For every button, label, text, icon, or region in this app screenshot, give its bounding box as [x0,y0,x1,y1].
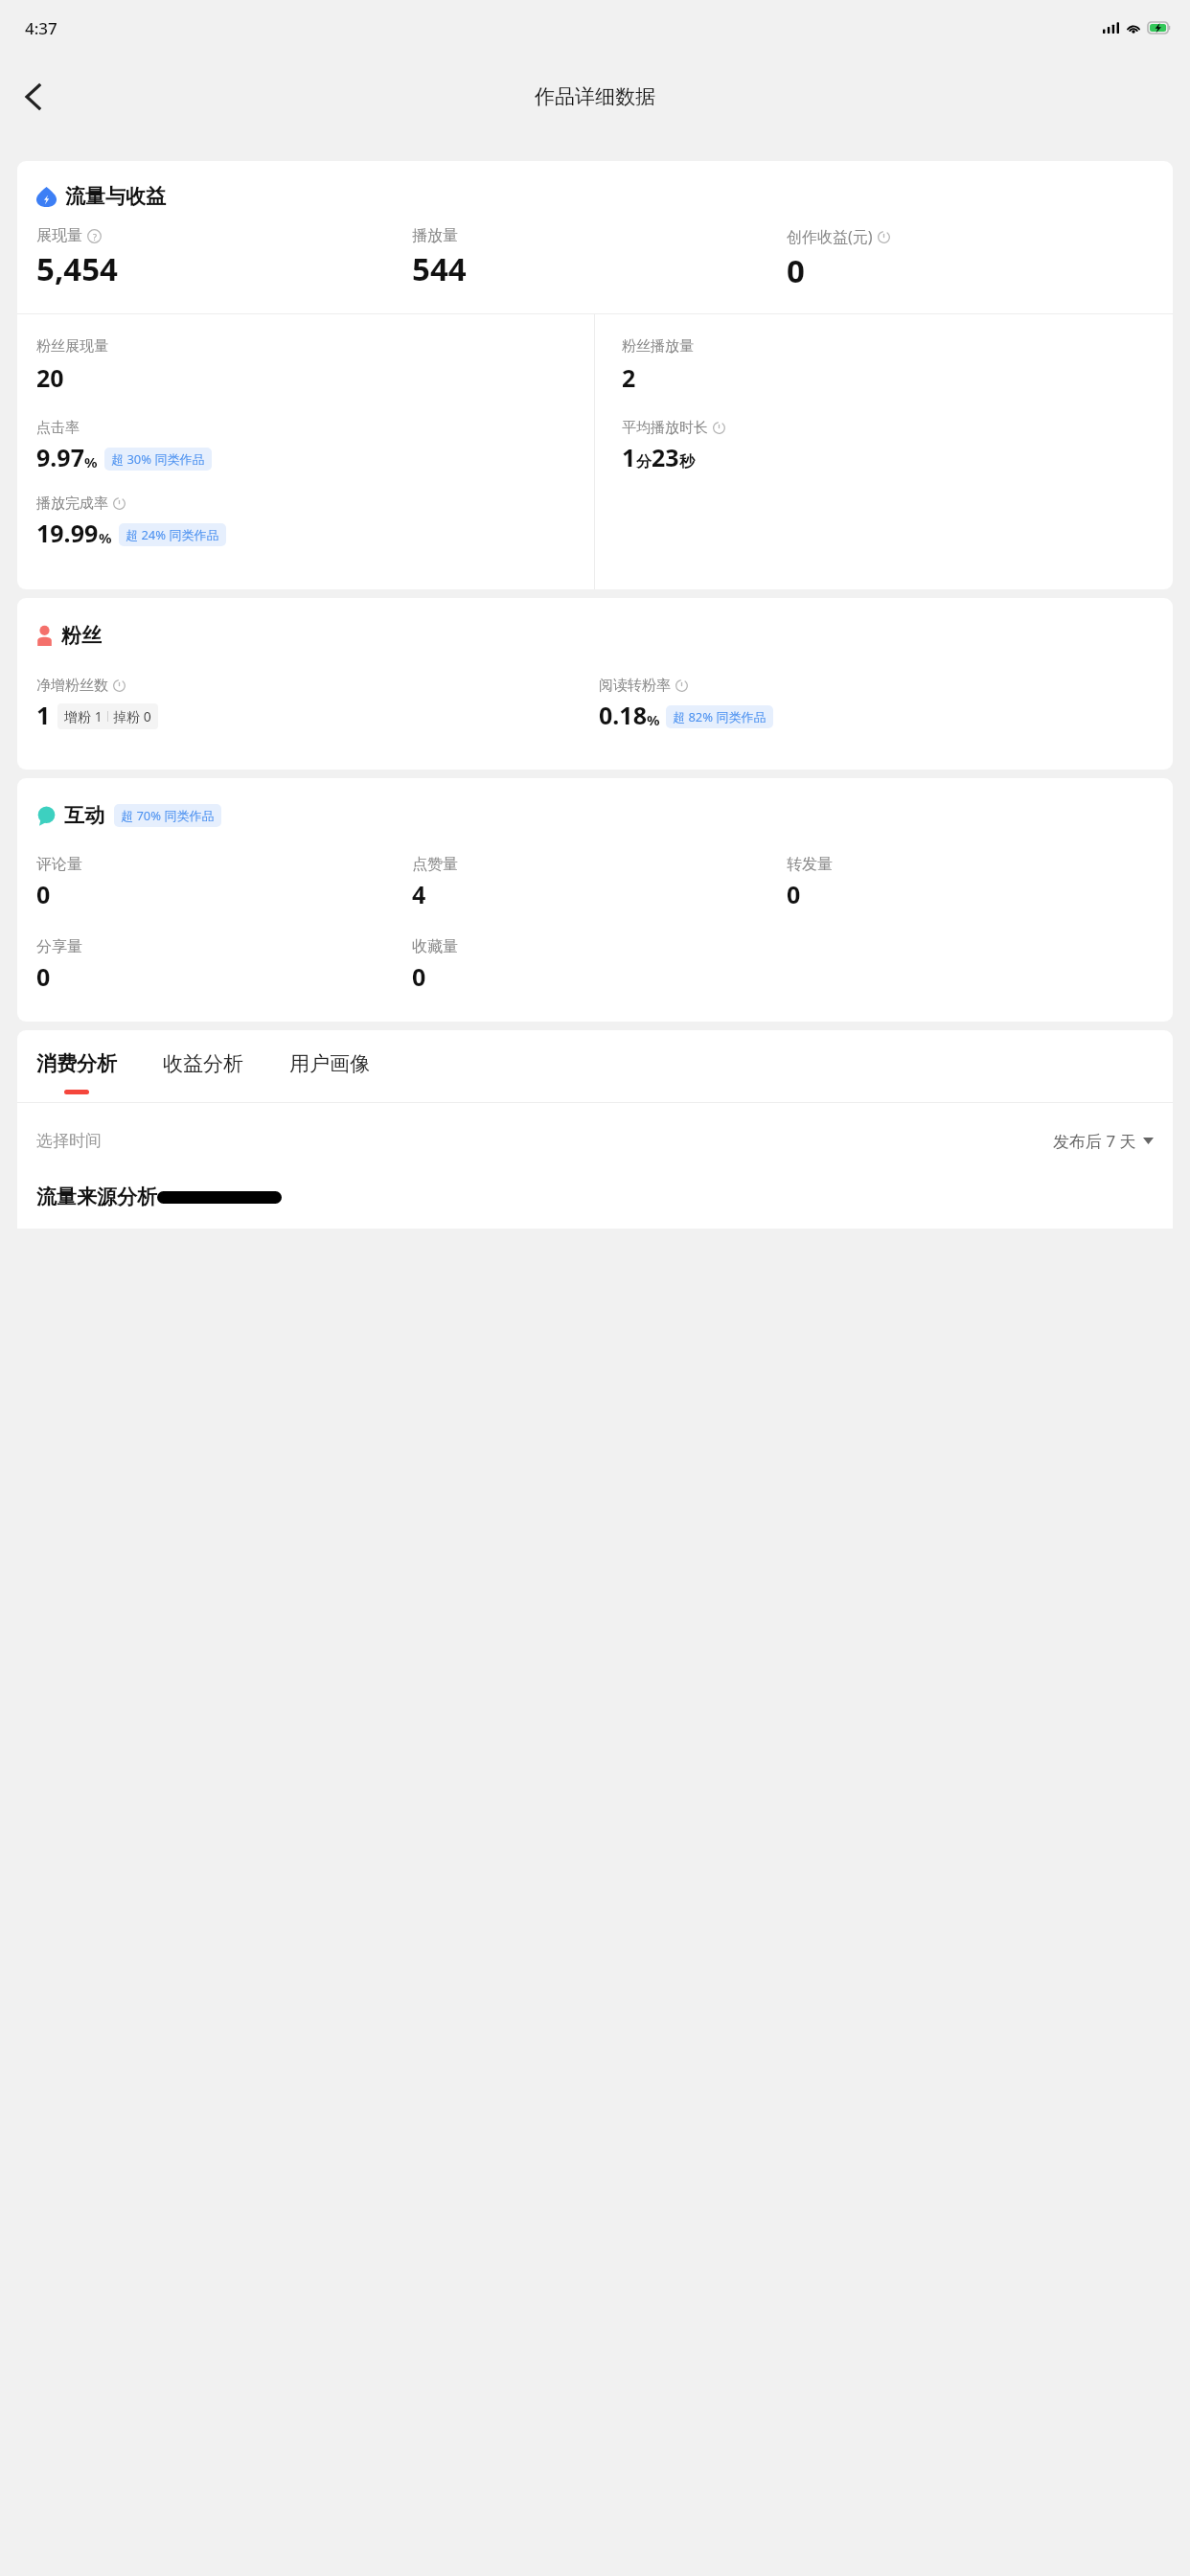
staticText: 播放量 [412,226,458,245]
staticText: 点赞量 [412,855,458,874]
staticText: 0 [787,878,801,910]
staticText: 收益分析 [163,1051,243,1076]
staticText: 544 [412,247,467,290]
staticText: 点击率 [36,419,80,437]
staticText: 流量与收益 [65,184,166,209]
button[interactable]: Back [6,70,59,124]
staticText: % [84,452,98,471]
staticText: 超 30% 同类作品 [111,450,205,468]
staticText: 选择时间 [36,1131,102,1151]
staticText: 0.18 [599,699,647,731]
staticText: 收藏量 [412,937,458,956]
staticText: 粉丝 [61,623,102,648]
staticText: 掉粉 0 [113,707,151,725]
staticText: 净增粉丝数 [36,677,108,695]
staticText: 发布后 7 天 [1053,1130,1136,1152]
staticText: 作品详细数据 [535,84,655,109]
staticText: 19.99 [36,517,99,549]
staticText: 4 [412,878,426,910]
staticText: 评论量 [36,855,82,874]
staticText: 1 [36,699,51,731]
staticText: 播放完成率 [36,494,108,513]
staticText: 平均播放时长 [622,419,708,437]
staticText: 增粉 1 [64,707,103,725]
staticText: 23 [652,441,679,473]
staticText: 流量来源分析 [36,1184,157,1209]
staticText: 创作收益(元) [787,226,873,247]
staticText: % [99,528,112,547]
button[interactable]: 选择时间 [36,1130,1154,1152]
button[interactable]: 消费分析 [36,1051,117,1094]
staticText: 0 [412,960,426,993]
staticText: 展现量 [36,226,82,245]
staticText: 互动 [64,803,104,828]
staticText: 9.97 [36,441,84,473]
staticText: 阅读转粉率 [599,677,671,695]
staticText: 超 24% 同类作品 [126,526,219,543]
staticText: 2 [622,361,636,394]
staticText: 超 70% 同类作品 [121,807,215,824]
staticText: 秒 [679,452,695,471]
staticText: 5,454 [36,247,118,290]
staticText: 用户画像 [289,1051,370,1076]
staticText: 粉丝展现量 [36,337,108,356]
staticText: 粉丝播放量 [622,337,694,356]
staticText: % [647,710,660,729]
staticText: 4:37 [25,17,57,39]
staticText: 20 [36,361,64,394]
staticText: 0 [36,878,51,910]
button[interactable]: 用户画像 [289,1051,370,1094]
staticText: 0 [36,960,51,993]
staticText: ? [93,231,97,242]
button[interactable]: 收益分析 [163,1051,243,1094]
staticText: 分享量 [36,937,82,956]
staticText: 0 [787,249,805,292]
staticText: 分 [636,452,652,471]
staticText: 消费分析 [36,1051,117,1076]
staticText: 超 82% 同类作品 [673,708,767,725]
staticText: 1 [622,441,636,473]
staticText: 转发量 [787,855,833,874]
